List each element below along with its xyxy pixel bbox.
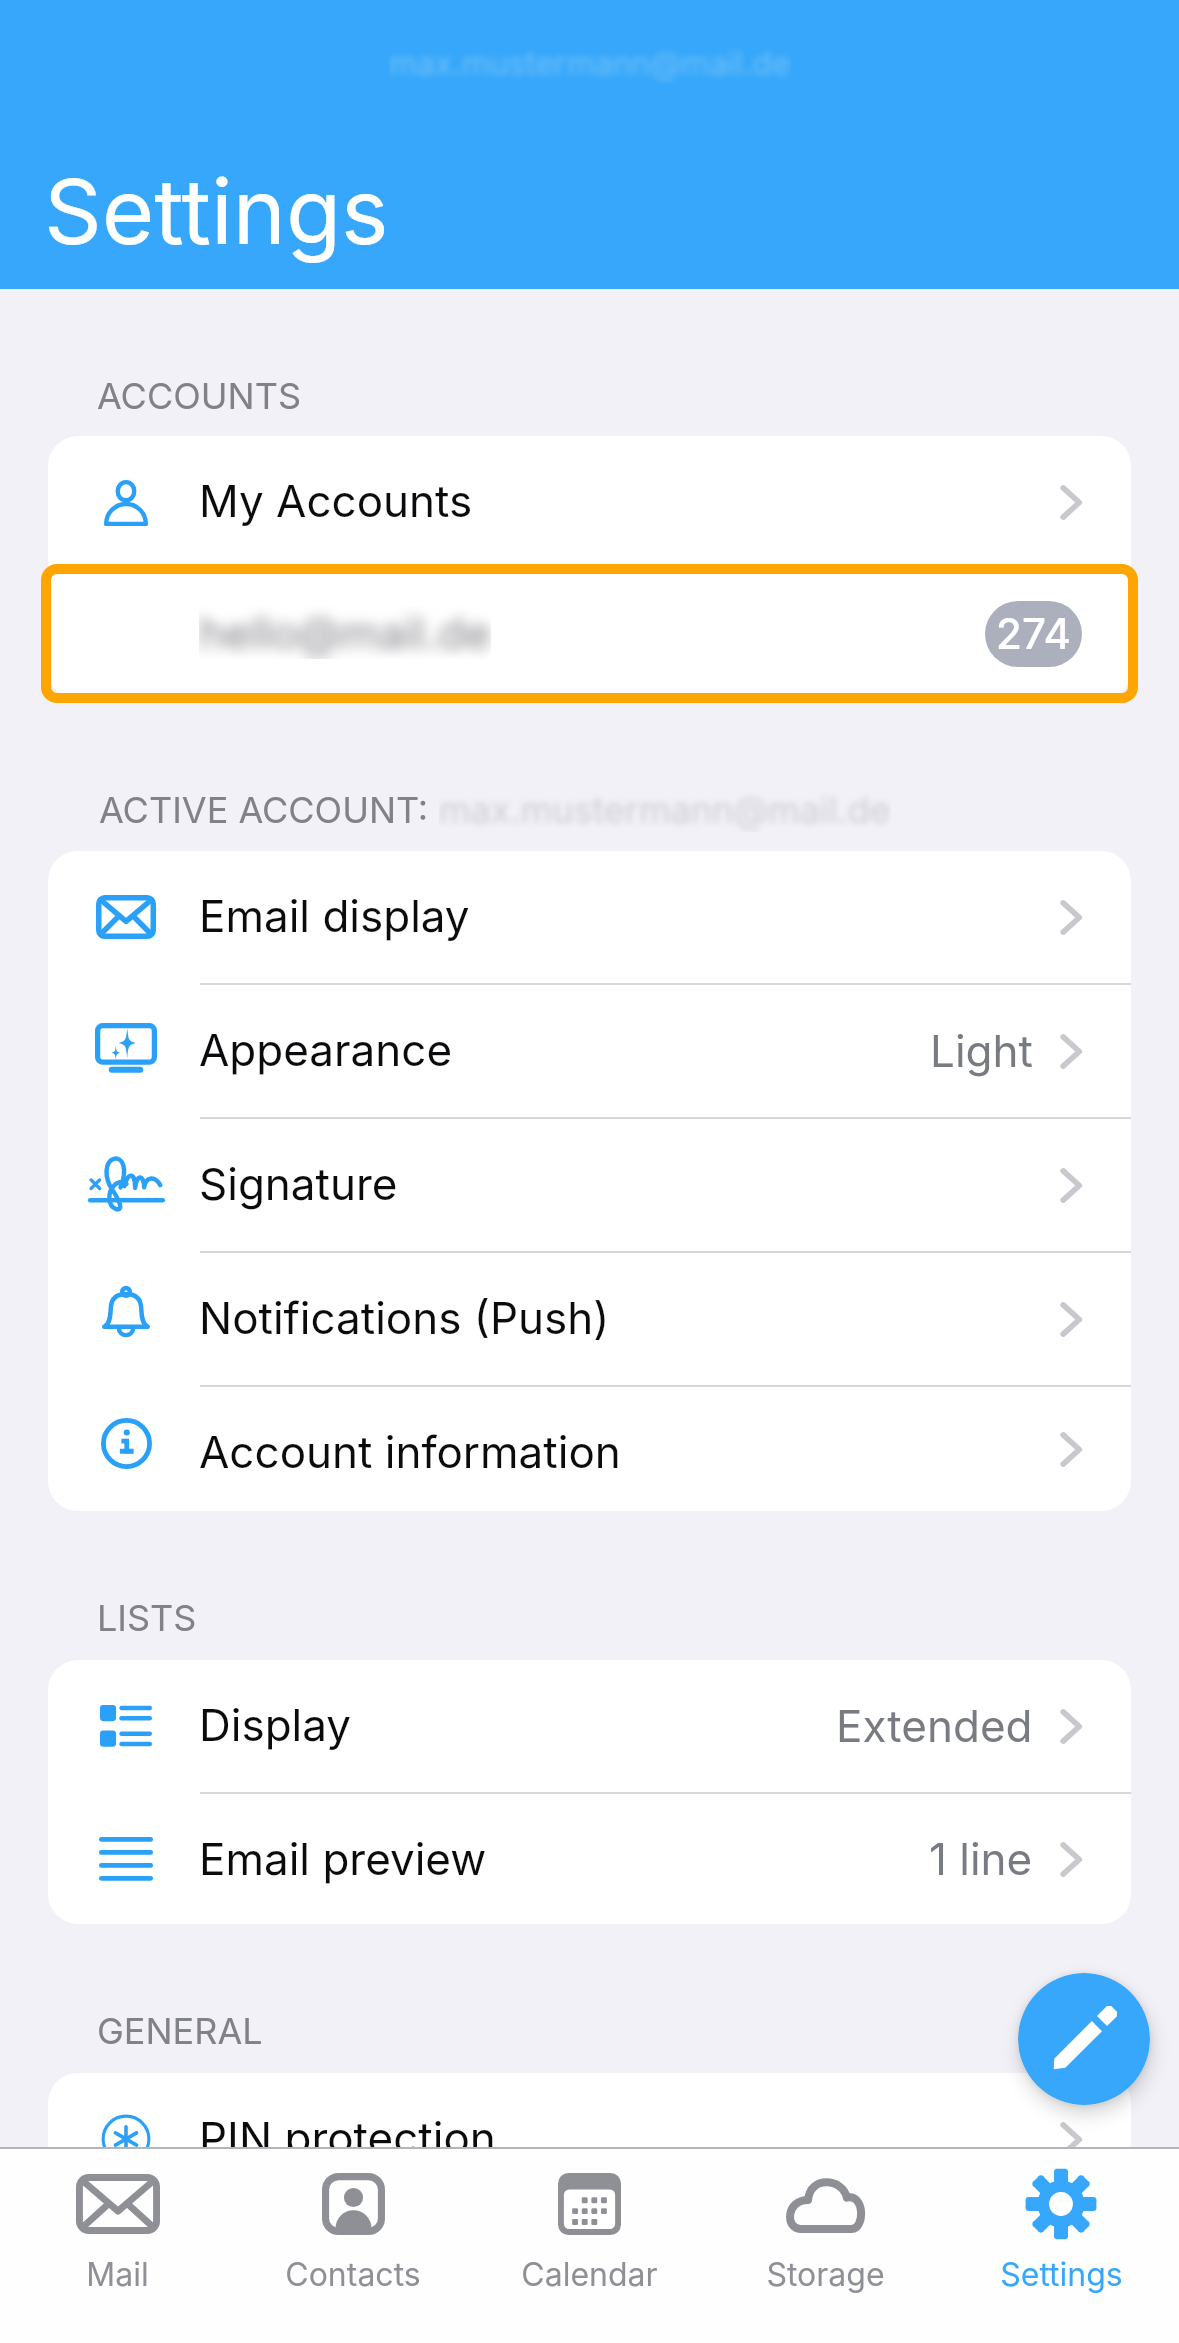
staticText: PIN protection <box>199 2111 496 2164</box>
staticText: Settings <box>1000 2255 1123 2294</box>
staticText: hello@mail.de <box>199 606 491 659</box>
staticText: Signature <box>199 1157 398 1210</box>
button[interactable]: Notifications (Push) <box>48 1253 1131 1385</box>
staticText: Email preview <box>199 1832 487 1885</box>
button[interactable]: Display <box>48 1660 1131 1792</box>
button[interactable]: Storage <box>707 2149 943 2343</box>
button[interactable]: Signature <box>48 1119 1131 1251</box>
button[interactable]: PIN protection <box>48 2073 1131 2205</box>
staticText: My Accounts <box>199 474 473 527</box>
staticText: Display <box>199 1698 352 1751</box>
button[interactable]: Email display <box>48 851 1131 983</box>
staticText: max.mustermann@mail.de <box>439 788 891 832</box>
button[interactable]: Compose new email <box>1018 1973 1150 2105</box>
button[interactable]: Selected account hello@mail.de <box>41 564 1138 703</box>
staticText: Light <box>930 1024 1033 1077</box>
button[interactable]: Appearance <box>48 985 1131 1117</box>
button[interactable]: Email preview <box>48 1794 1131 1924</box>
staticText: Settings <box>44 157 389 266</box>
staticText: GENERAL <box>97 2009 263 2053</box>
button[interactable]: Contacts <box>235 2149 471 2343</box>
staticText: Calendar <box>521 2255 658 2294</box>
staticText: 274 <box>996 608 1071 659</box>
button[interactable]: My Accounts <box>48 436 1131 568</box>
staticText: LISTS <box>97 1596 197 1640</box>
staticText: Appearance <box>199 1023 453 1076</box>
staticText: Contacts <box>285 2255 421 2294</box>
staticText: Storage <box>766 2255 885 2294</box>
staticText: ACTIVE ACCOUNT: <box>99 788 439 832</box>
staticText: Email display <box>199 889 470 942</box>
staticText: Mail <box>86 2255 149 2294</box>
staticText: ACCOUNTS <box>97 374 301 418</box>
staticText: 1 line <box>929 1832 1033 1885</box>
button[interactable]: Settings <box>943 2149 1179 2343</box>
button[interactable]: Account information <box>48 1387 1131 1511</box>
staticText: max.mustermann@mail.de <box>389 44 791 83</box>
staticText: Notifications (Push) <box>199 1291 610 1344</box>
staticText: Extended <box>836 1699 1033 1752</box>
button[interactable]: hello@mail.de <box>48 568 1131 700</box>
button[interactable]: Mail <box>0 2149 235 2343</box>
button[interactable]: Calendar <box>471 2149 707 2343</box>
staticText: Account information <box>199 1425 621 1478</box>
